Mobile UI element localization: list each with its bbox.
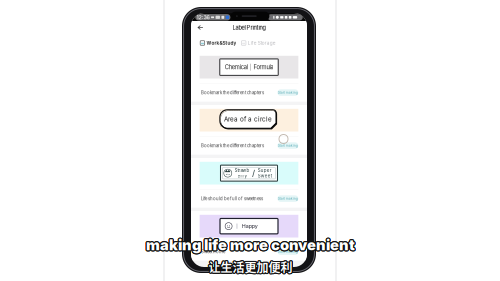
staticText: 让生活更加便利 — [208, 257, 292, 275]
staticText: 让生活更加便利 — [209, 259, 293, 276]
button[interactable]: Life Storage — [240, 38, 277, 48]
staticText: making life more convenient — [146, 235, 355, 253]
staticText: 让生活更加便利 — [208, 258, 292, 275]
staticText: 12:36 — [197, 14, 210, 21]
button[interactable]: Work&Study — [199, 38, 237, 48]
staticText: Work&Study — [206, 40, 236, 46]
staticText: making life more convenient — [146, 235, 355, 253]
staticText: 让生活更加便利 — [209, 258, 293, 276]
staticText: making life more convenient — [147, 235, 356, 253]
staticText: Sweet — [258, 173, 272, 178]
staticText: Start making — [278, 144, 298, 148]
staticText: Super — [258, 168, 272, 173]
button[interactable]: Start making — [277, 89, 298, 96]
staticText: Strawb — [234, 168, 249, 173]
staticText: 让生活更加便利 — [209, 258, 293, 275]
staticText: Start making — [278, 91, 298, 95]
staticText: making life more convenient — [146, 237, 355, 255]
staticText: Happy — [242, 223, 258, 229]
staticText: making life more convenient — [147, 237, 356, 255]
staticText: making life more convenient — [147, 236, 356, 254]
staticText: / — [252, 168, 255, 178]
button[interactable]: Start making — [277, 248, 298, 255]
staticText: making life more convenient — [145, 236, 354, 253]
staticText: making life more convenient — [146, 237, 355, 255]
staticText: Chemical — [225, 64, 248, 71]
staticText: making life more convenient — [147, 236, 356, 253]
staticText: Bookmark the different chapters — [201, 90, 264, 95]
staticText: 让生活更加便利 — [208, 257, 292, 275]
staticText: making life more convenient — [145, 236, 354, 254]
staticText: 让生活更加便利 — [209, 259, 293, 277]
staticText: 让生活更加便利 — [208, 258, 292, 276]
staticText: 让生活更加便利 — [209, 259, 293, 276]
staticText: 让生活更加便利 — [208, 259, 292, 276]
staticText: Life Storage — [248, 40, 276, 46]
staticText: Start making — [278, 197, 298, 201]
button[interactable]: Start making — [277, 195, 298, 202]
staticText: making life more convenient — [145, 235, 354, 253]
staticText: 让生活更加便利 — [208, 259, 292, 277]
staticText: 让生活更加便利 — [207, 258, 291, 276]
staticText: Label Printing — [232, 24, 265, 31]
staticText: 让生活更加便利 — [209, 258, 293, 275]
staticText: making life more convenient — [146, 236, 355, 254]
staticText: making life more convenient — [146, 235, 355, 253]
staticText: making life more convenient — [146, 237, 355, 255]
staticText: making life more convenient — [147, 236, 356, 254]
staticText: making life more convenient — [145, 236, 354, 254]
staticText: Area of a circle — [224, 115, 272, 123]
staticText: 让生活更加便利 — [208, 259, 292, 277]
staticText: 让生活更加便利 — [208, 259, 292, 276]
button[interactable]: Start making — [277, 142, 298, 149]
staticText: erry — [237, 173, 246, 178]
staticText: Bookmark the different chapters — [201, 143, 264, 148]
button[interactable]: Back — [193, 21, 208, 34]
staticText: Formula — [253, 64, 273, 71]
staticText: 让生活更加便利 — [208, 258, 292, 275]
staticText: making life more convenient — [145, 237, 354, 255]
staticText: Sweet home — [201, 249, 225, 254]
staticText: 让生活更加便利 — [209, 257, 293, 275]
staticText: Life should be full of sweetness — [201, 196, 263, 201]
staticText: Start making — [278, 250, 298, 254]
